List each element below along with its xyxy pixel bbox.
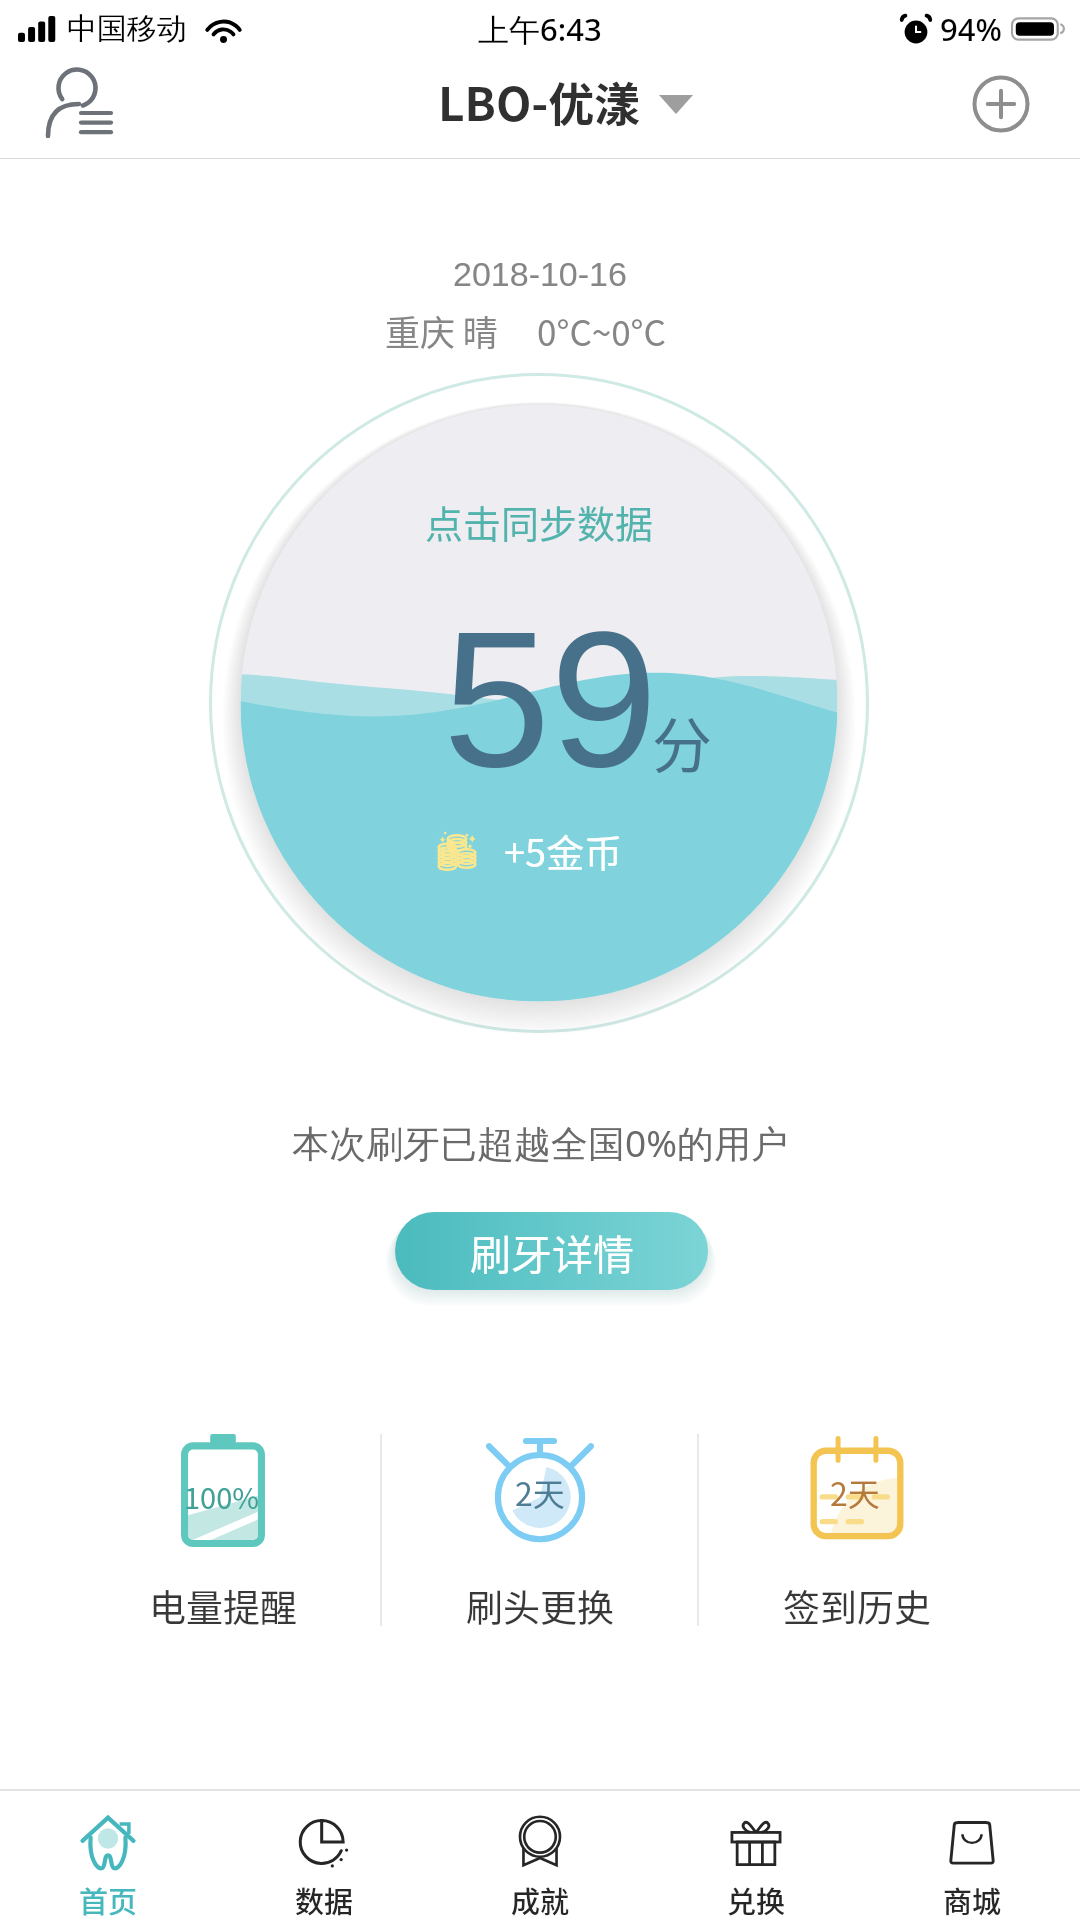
staticText: 首页 [79,1879,138,1920]
staticText: 电量提醒 [149,1579,297,1633]
staticText: 刷头更换 [466,1579,614,1633]
staticText: 签到历史 [783,1579,931,1633]
button[interactable]: 2天 [382,1420,697,1640]
staticText: LBO-优漾 [438,68,641,135]
button[interactable]: 2天 [699,1420,1014,1640]
staticText: 点击同步数据 [425,494,654,549]
staticText: 2018-10-16 [453,255,627,293]
staticText: 2天 [515,1469,565,1515]
button[interactable]: 数据 [216,1791,432,1920]
staticText: +5金币 [504,823,623,878]
staticText: 兑换 [727,1879,786,1920]
staticText: 分 [652,698,712,785]
staticText: 94% [940,8,1002,50]
staticText: 本次刷牙已超越全国0%的用户 [292,1117,788,1168]
button[interactable]: 兑换 [648,1791,864,1920]
staticText: 59 [443,591,658,807]
button[interactable]: 商城 [864,1791,1080,1920]
staticText: 100% [184,1475,259,1517]
staticText: 商城 [943,1879,1002,1920]
staticText: 刷牙详情 [470,1222,634,1281]
staticText: 上午6:43 [478,8,602,50]
button[interactable]: Add device [956,59,1046,149]
staticText: 数据 [295,1879,354,1920]
staticText: 成就 [511,1879,570,1920]
staticText: 重庆 晴 0°C~0°C [385,305,666,356]
button[interactable]: 刷牙详情 [395,1212,708,1290]
staticText: 中国移动 [67,10,187,48]
button[interactable]: Profile [19,54,139,154]
button[interactable]: 点击同步数据 [209,373,869,1033]
button[interactable]: 成就 [432,1791,648,1920]
button[interactable]: 100% [66,1420,380,1640]
button[interactable]: 首页 [0,1791,216,1920]
staticText: 2天 [830,1469,880,1515]
